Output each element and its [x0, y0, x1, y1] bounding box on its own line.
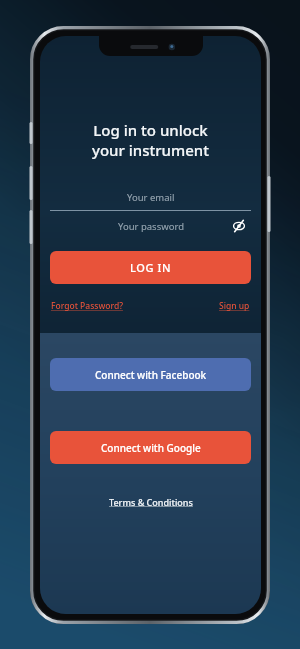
button[interactable]: Show password: [229, 216, 249, 236]
button[interactable]: LOG IN: [50, 251, 251, 284]
staticText: Forgot Password?: [51, 300, 123, 312]
staticText: Your password: [118, 220, 184, 233]
button[interactable]: Terms & Conditions: [109, 496, 193, 508]
staticText: Connect with Google: [101, 441, 201, 455]
staticText: Terms & Conditions: [109, 496, 193, 508]
button[interactable]: Your email: [40, 184, 261, 210]
button[interactable]: Connect with Facebook: [50, 358, 251, 391]
button[interactable]: Your password: [40, 211, 261, 241]
staticText: Sign up: [219, 300, 250, 312]
staticText: LOG IN: [130, 260, 172, 275]
button[interactable]: Forgot Password?: [51, 300, 123, 312]
button[interactable]: Sign up: [219, 300, 250, 312]
staticText: Connect with Facebook: [95, 368, 207, 382]
staticText: Log in to unlock your instrument: [50, 120, 251, 160]
staticText: Your email: [127, 191, 175, 204]
button[interactable]: Connect with Google: [50, 431, 251, 464]
